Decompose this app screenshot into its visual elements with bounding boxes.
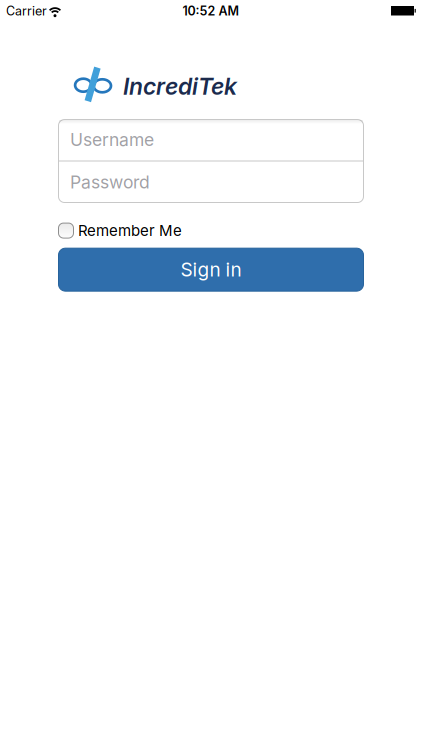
button[interactable]: Password xyxy=(58,161,364,203)
staticText: Carrier xyxy=(6,3,47,18)
staticText: 10:52 AM xyxy=(182,3,239,18)
staticText: Remember Me xyxy=(78,221,182,240)
staticText: Username xyxy=(70,129,154,150)
button[interactable]: Sign in xyxy=(58,248,364,292)
button[interactable]: Remember Me xyxy=(58,221,182,240)
staticText: Sign in xyxy=(180,258,241,281)
staticText: IncrediTek xyxy=(123,73,237,100)
staticText: Password xyxy=(70,172,150,193)
button[interactable]: Username xyxy=(58,119,364,160)
